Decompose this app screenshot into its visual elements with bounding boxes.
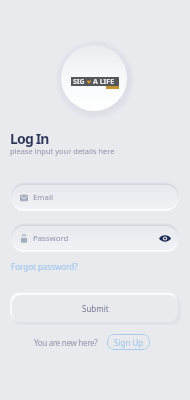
button[interactable]: Sign Up bbox=[107, 334, 150, 350]
staticText: You are new here? bbox=[34, 337, 98, 348]
button[interactable]: Email bbox=[12, 185, 178, 209]
staticText: Log In bbox=[10, 129, 49, 148]
staticText: Sign Up bbox=[114, 337, 144, 348]
staticText: Password bbox=[33, 233, 69, 244]
button[interactable]: Forgot password? bbox=[9, 259, 80, 274]
button[interactable]: Show password bbox=[158, 231, 172, 245]
staticText: A LIFE bbox=[93, 77, 115, 86]
staticText: Submit bbox=[82, 303, 109, 314]
button[interactable]: Password bbox=[12, 226, 178, 250]
staticText: SIG bbox=[73, 77, 85, 86]
staticText: Email bbox=[33, 192, 54, 203]
staticText: please input your details here bbox=[10, 146, 115, 156]
staticText: Forgot password? bbox=[11, 261, 78, 272]
button[interactable]: Submit bbox=[12, 295, 178, 322]
